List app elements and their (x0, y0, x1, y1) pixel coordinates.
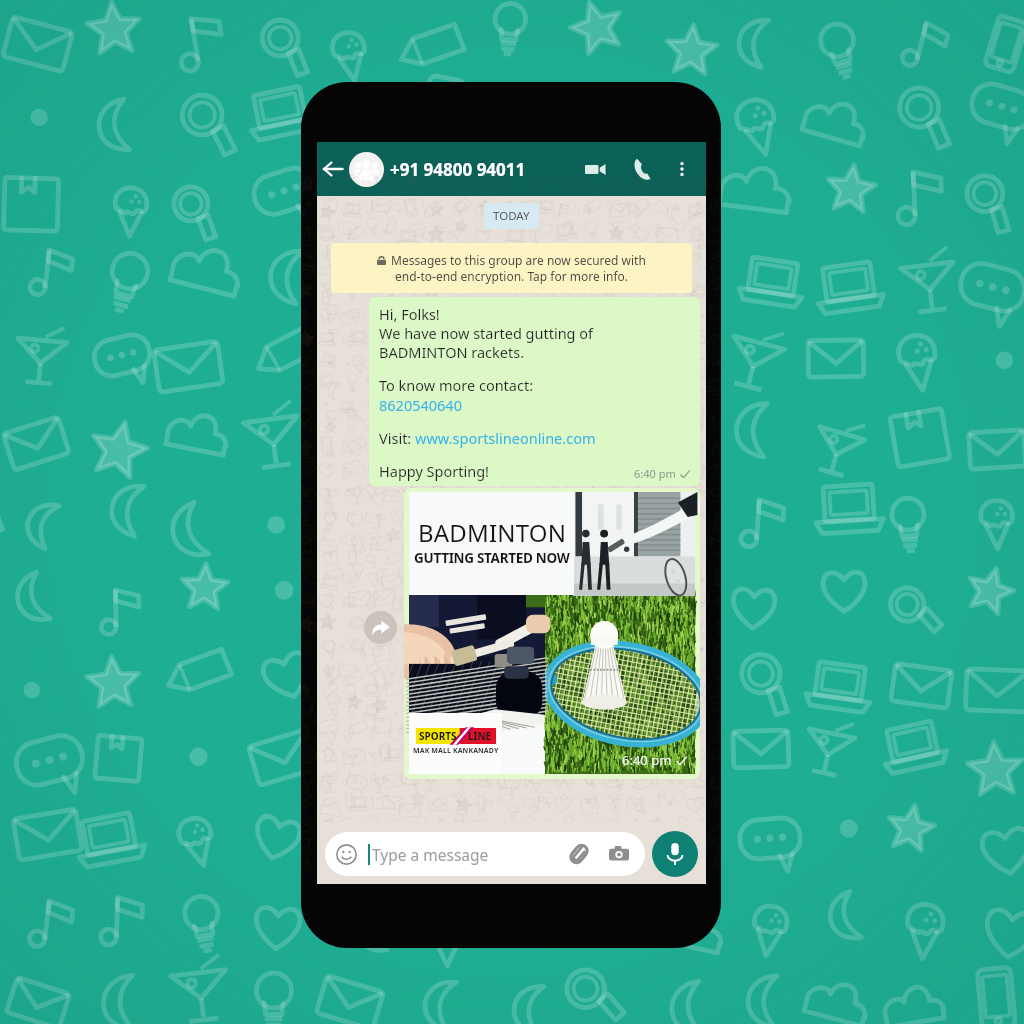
button[interactable]: Group avatar (349, 152, 384, 187)
staticText: SPORTS (419, 729, 457, 743)
staticText: 6:40 pm (622, 751, 672, 769)
staticText: GUTTING STARTED NOW (414, 549, 570, 567)
staticText: MAK MALL KANKANADY (413, 746, 499, 756)
staticText: +91 94800 94011 (390, 158, 526, 181)
staticText: Messages to this group are now secured w… (391, 252, 646, 268)
button[interactable]: Messages to this group are now secured w… (331, 243, 692, 293)
staticText: To know more contact: (379, 375, 534, 395)
button[interactable]: Call (627, 154, 657, 184)
button[interactable]: Attach (567, 842, 591, 866)
staticText: Hi, Folks! We have now started gutting o… (379, 304, 594, 362)
button[interactable]: Video call (579, 153, 611, 185)
staticText: LINE (468, 729, 492, 743)
button[interactable]: Forward (364, 611, 397, 644)
button[interactable]: Type a message (325, 832, 645, 876)
button[interactable]: BADMINTON (404, 488, 700, 779)
button[interactable]: Camera (607, 842, 631, 866)
staticText: Happy Sporting! (379, 461, 489, 481)
staticText: TODAY (493, 208, 530, 224)
button[interactable]: Back (319, 155, 347, 183)
staticText: 8620540640 (379, 395, 462, 415)
staticText: BADMINTON (418, 516, 567, 549)
button[interactable]: Hi, Folks! We have now started gutting o… (369, 297, 700, 486)
button[interactable]: More options (669, 156, 695, 182)
button[interactable]: Voice message (652, 831, 698, 877)
button[interactable]: TODAY (484, 203, 539, 229)
staticText: Visit: www.sportslineonline.com (379, 428, 596, 448)
staticText: Type a message (372, 844, 489, 865)
staticText: end-to-end encryption. Tap for more info… (395, 268, 629, 284)
staticText: 6:40 pm (634, 466, 676, 481)
